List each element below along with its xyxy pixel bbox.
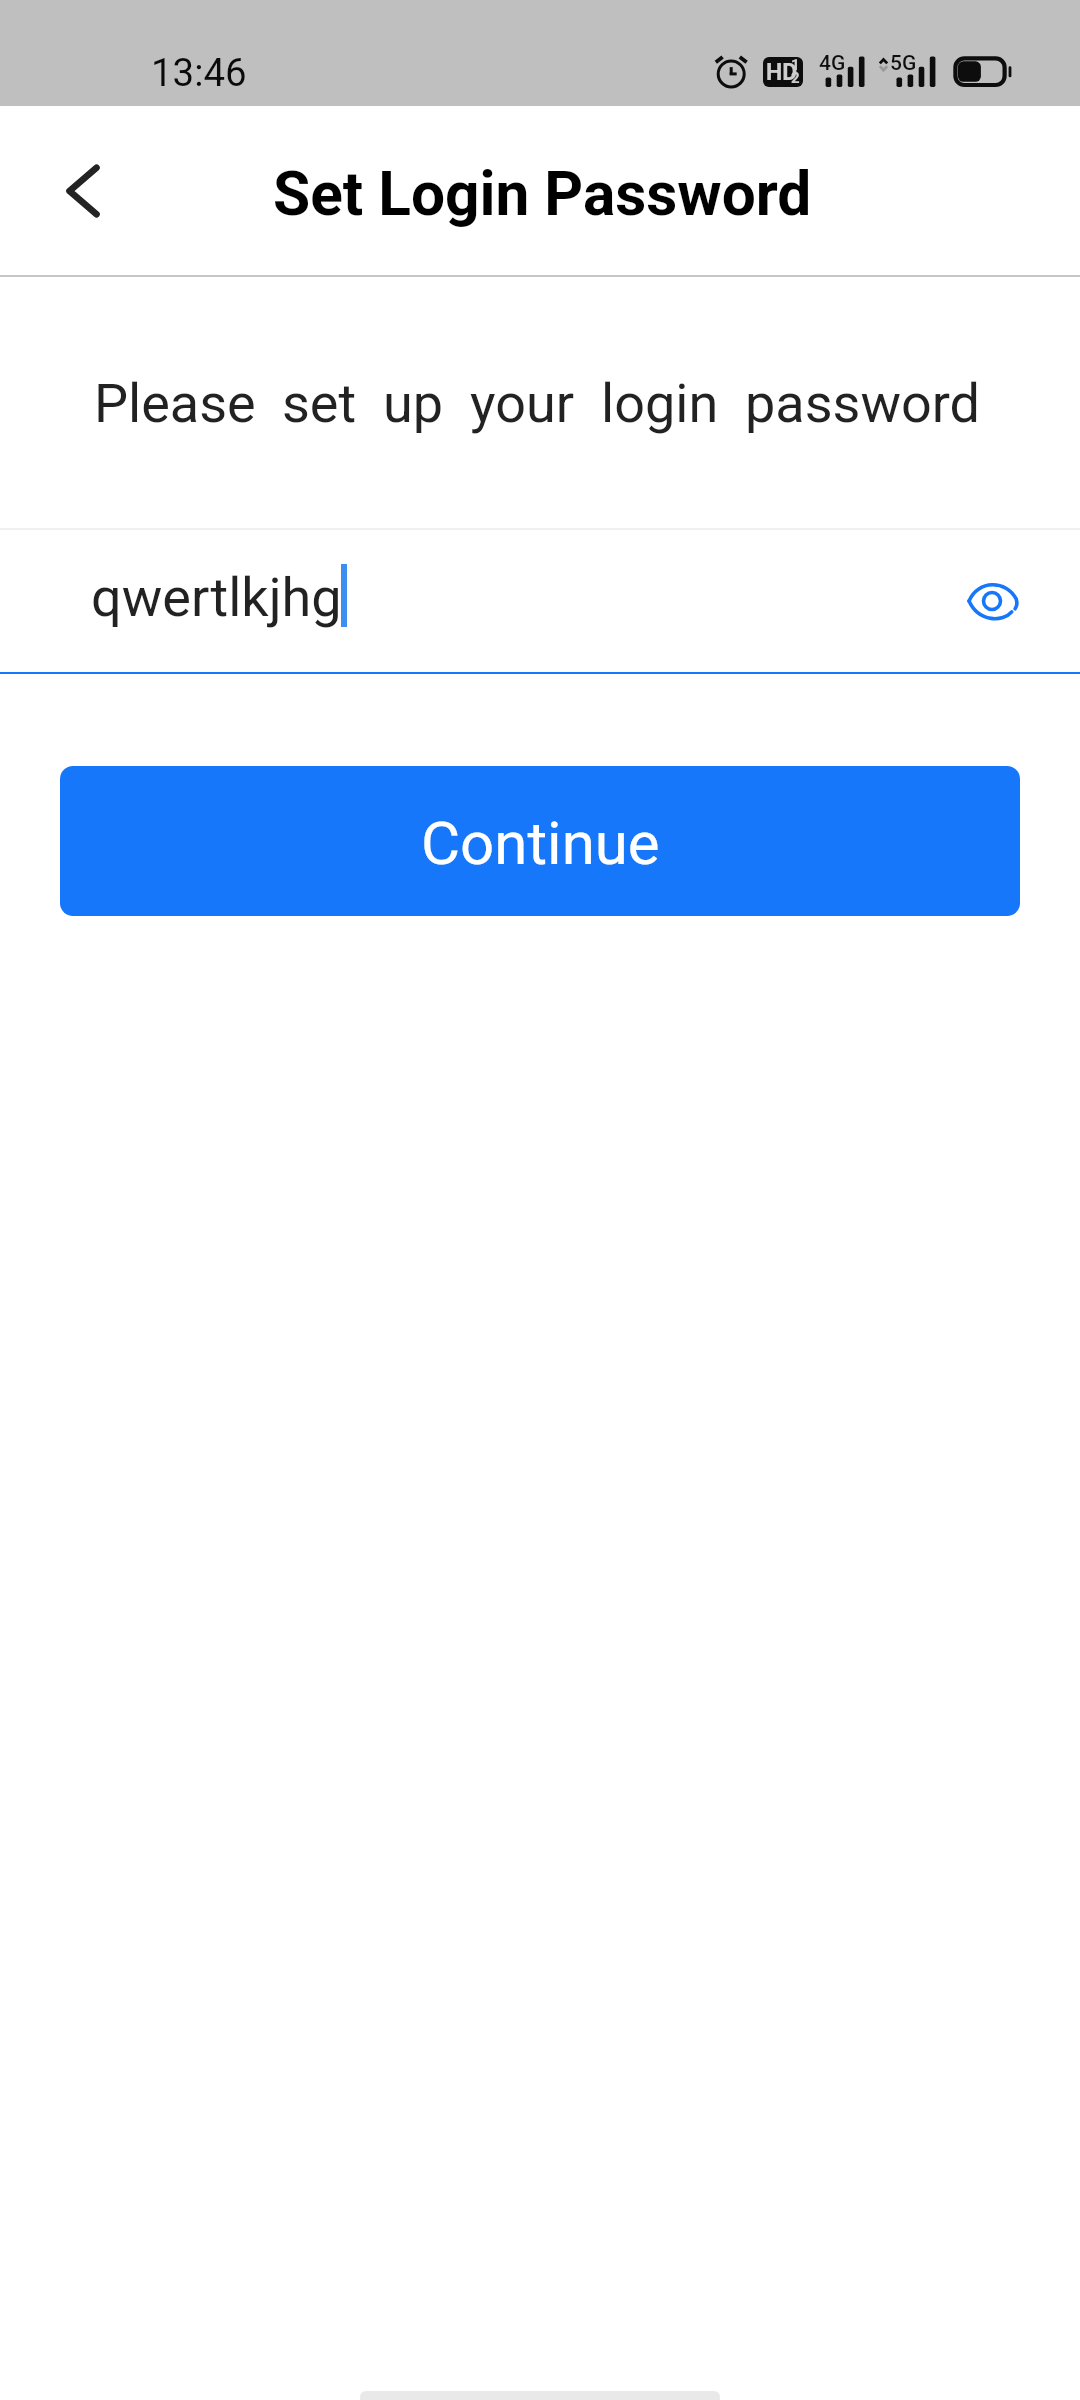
staticText: qwertlkjhg bbox=[91, 566, 342, 629]
staticText: 13:46 bbox=[151, 50, 247, 95]
staticText: 5G bbox=[890, 51, 917, 76]
staticText: 1 bbox=[791, 57, 800, 74]
button[interactable]: qwertlkjhg bbox=[0, 530, 1080, 672]
staticText: 4G bbox=[819, 51, 846, 76]
staticText: password bbox=[745, 372, 981, 435]
staticText: HD bbox=[766, 59, 798, 86]
staticText: Set Login Password bbox=[273, 159, 812, 230]
staticText: login bbox=[601, 372, 719, 435]
button[interactable]: Back bbox=[28, 136, 138, 246]
staticText: 2 bbox=[791, 69, 800, 87]
staticText: your bbox=[470, 372, 575, 435]
button[interactable]: Show password bbox=[947, 555, 1039, 647]
staticText: set bbox=[282, 372, 357, 435]
button[interactable]: Continue bbox=[60, 766, 1020, 916]
staticText: Continue bbox=[421, 808, 660, 878]
staticText: up bbox=[383, 372, 444, 435]
staticText: Please bbox=[94, 372, 256, 435]
